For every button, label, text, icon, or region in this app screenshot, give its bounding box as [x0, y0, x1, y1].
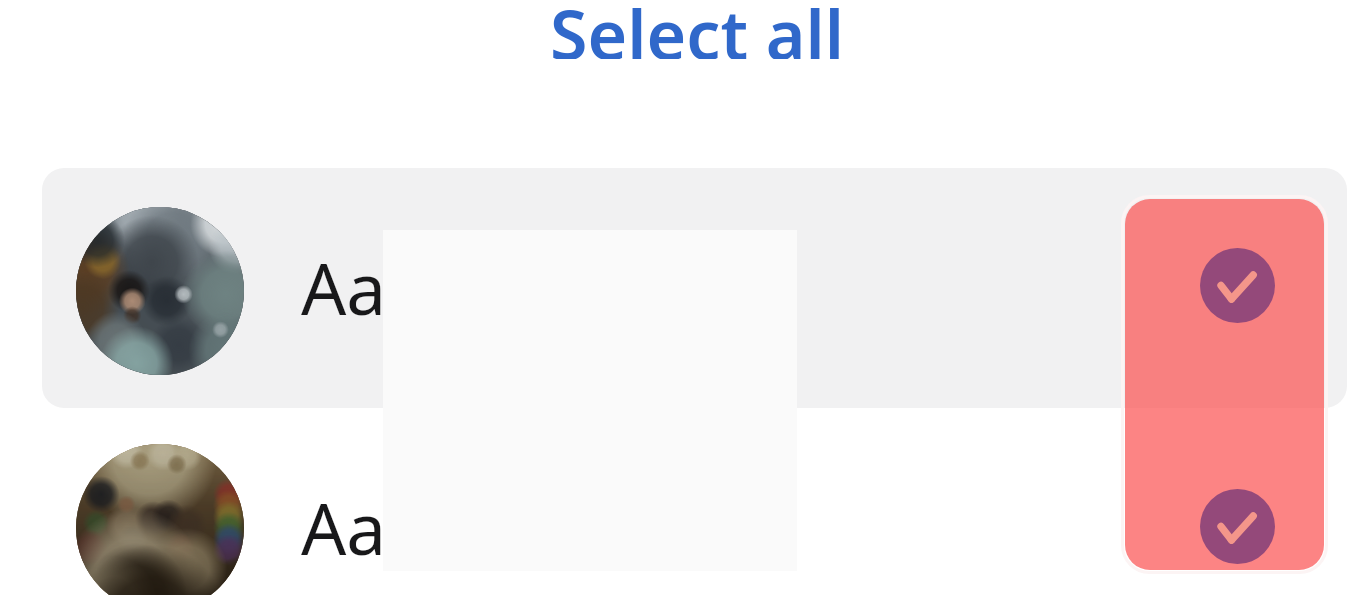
button[interactable] — [1125, 199, 1324, 570]
button[interactable]: Aa — [42, 168, 1347, 408]
button[interactable]: Select all — [540, 0, 850, 72]
staticText: Aa — [301, 239, 387, 336]
staticText: Aa — [301, 479, 387, 576]
staticText: Select all — [550, 0, 844, 59]
button[interactable]: Selected — [1200, 489, 1275, 564]
button[interactable]: Aa — [42, 408, 1347, 595]
button[interactable]: Selected — [1200, 248, 1275, 323]
